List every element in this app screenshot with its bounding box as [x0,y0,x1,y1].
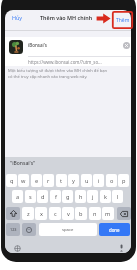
button[interactable]: h [75,190,86,203]
button[interactable]: t [56,174,67,187]
button[interactable]: e [31,174,42,187]
staticText: l [117,193,119,201]
button[interactable]: b [75,207,87,220]
button[interactable]: done [99,223,130,236]
staticText: i [98,177,100,185]
button[interactable]: y [68,174,79,187]
staticText: a [16,193,20,201]
button[interactable]: p [118,174,129,187]
staticText: d [41,193,45,201]
staticText: p [122,177,126,185]
staticText: f [55,193,57,201]
staticText: j [92,193,94,201]
button[interactable] [117,207,131,220]
staticText: g [66,193,70,201]
button[interactable] [22,223,36,236]
button[interactable]: m [102,207,114,220]
button[interactable]: i [93,174,104,187]
button[interactable]: z [22,207,34,220]
staticText: v [67,210,70,218]
staticText: h [79,193,83,201]
staticText: Hủy [12,14,23,21]
staticText: z [27,210,30,218]
staticText: done [109,227,120,233]
button[interactable]: l [112,190,123,203]
button[interactable]: d [37,190,48,203]
staticText: m [105,210,111,218]
staticText: b [79,210,83,218]
staticText: c [54,210,57,218]
staticText: Một biểu tượng sẽ được thêm vào MH chính… [8,68,108,74]
staticText: iBonsai's [28,42,47,48]
staticText: n [93,210,97,218]
staticText: space [62,227,74,233]
staticText: Thêm vào MH chính [40,14,93,21]
button[interactable]: u [81,174,92,187]
staticText: u [85,177,89,185]
button[interactable]: w [18,174,29,187]
button[interactable]: x [35,207,47,220]
button[interactable]: Hủy [8,12,26,22]
button[interactable]: j [87,190,98,203]
button[interactable]: s [25,190,36,203]
button[interactable]: a [12,190,23,203]
button[interactable] [5,37,131,66]
staticText: có thể truy cập nhanh vào trang web này. [8,74,88,80]
staticText: https://www.ibonsai.com/?utm_so... [28,59,102,65]
staticText: Thêm [116,17,130,24]
button[interactable]: 123 [6,223,20,236]
button[interactable]: g [62,190,73,203]
button[interactable]: v [62,207,74,220]
staticText: q [10,177,14,185]
staticText: x [40,210,43,218]
button[interactable] [123,42,130,49]
button[interactable]: "iBonsai's" [10,158,60,169]
staticText: "iBonsai's" [10,160,36,167]
staticText: 123 [10,227,17,232]
button[interactable]: Thêm [112,12,133,28]
button[interactable]: o [106,174,117,187]
button[interactable]: q [6,174,17,187]
button[interactable]: r [43,174,54,187]
button[interactable]: k [100,190,111,203]
staticText: o [110,177,114,185]
staticText: w [21,177,26,185]
staticText: r [47,177,50,185]
staticText: k [104,193,107,201]
staticText: s [29,193,32,201]
staticText: y [72,177,75,185]
staticText: e [35,177,39,185]
button[interactable]: f [50,190,61,203]
button[interactable]: space [39,223,97,236]
staticText: t [60,177,63,185]
button[interactable]: n [89,207,101,220]
button[interactable] [6,207,20,220]
button[interactable]: c [49,207,61,220]
